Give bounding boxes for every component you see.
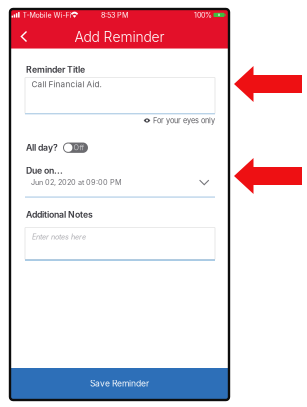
staticText: 100% [194,11,212,19]
staticText: Additional Notes [26,209,93,220]
button[interactable]: Back [13,25,35,47]
staticText: 8:53 PM [101,11,129,19]
staticText: For your eyes only [153,116,215,125]
staticText: Due on... [26,165,63,176]
staticText: Enter notes here [32,232,86,241]
staticText: Call Financial Aid. [31,79,101,89]
staticText: Jun 02, 2020 at 09:00 PM [31,178,122,187]
staticText: All day? [26,142,58,153]
button[interactable]: Call Financial Aid. [25,77,215,113]
staticText: T-Mobile Wi-Fi [22,11,71,19]
staticText: Reminder Title [26,64,85,75]
button[interactable]: All day, off [63,142,88,153]
staticText: Off [74,143,85,152]
button[interactable]: Jun 02, 2020 at 09:00 PM [25,175,215,193]
staticText: Add Reminder [74,29,164,45]
button[interactable]: Save Reminder [10,368,229,399]
button[interactable]: Enter notes here [25,227,215,259]
staticText: Save Reminder [90,378,149,389]
